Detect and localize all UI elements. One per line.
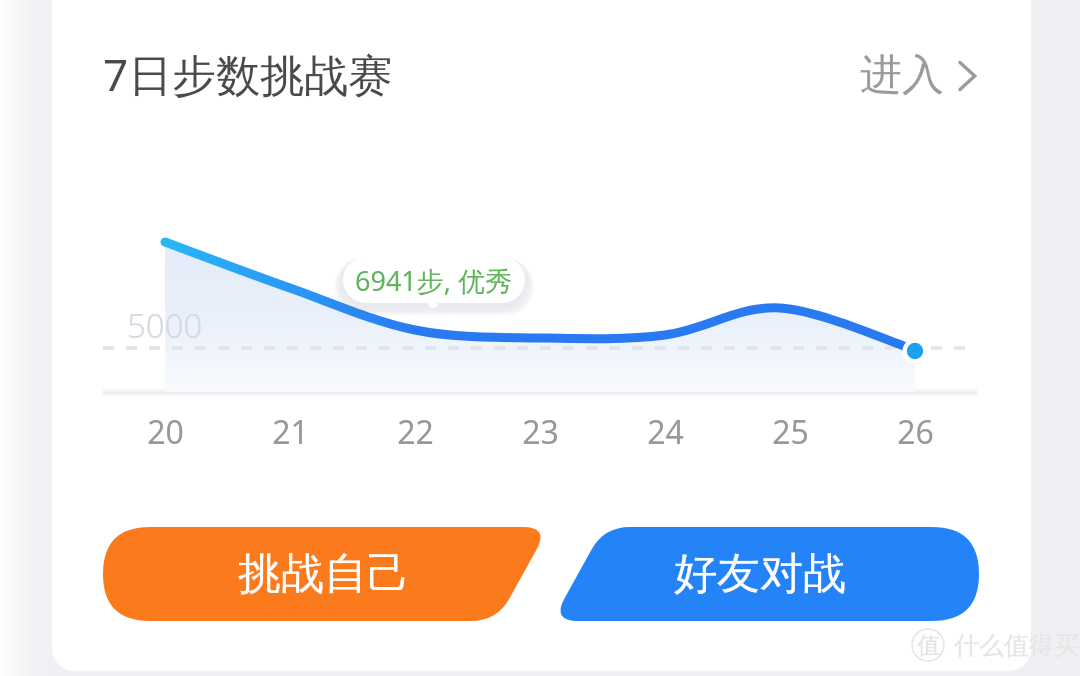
staticText: 24 [647,410,684,454]
staticText: 23 [522,410,559,454]
staticText: 好友对战 [674,547,846,601]
button[interactable]: 进入 [852,43,980,108]
staticText: 5000 [127,303,203,348]
staticText: 6941步, 优秀 [355,262,513,299]
staticText: 进入 [860,49,944,102]
staticText: 26 [897,410,934,454]
button[interactable]: 6941步, 优秀 [343,257,525,303]
staticText: 什么值得买 [954,630,1079,661]
staticText: 7日步数挑战赛 [103,44,393,104]
staticText: 25 [772,410,809,454]
button[interactable]: 挑战自己 [106,527,541,621]
staticText: 21 [272,410,309,454]
staticText: 挑战自己 [238,547,410,601]
staticText: 值 [917,631,940,660]
staticText: 22 [397,410,434,454]
other: Open step challenge [944,61,976,91]
button[interactable]: 好友对战 [543,527,977,621]
staticText: 20 [147,410,184,454]
